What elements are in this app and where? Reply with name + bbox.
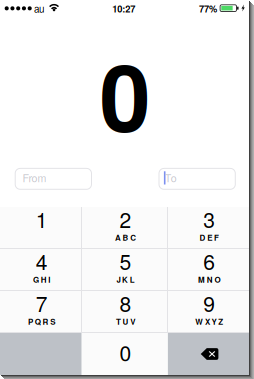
staticText: U	[123, 316, 129, 327]
staticText: From	[22, 170, 46, 185]
button[interactable]: Blank	[0, 333, 82, 375]
staticText: C	[130, 232, 136, 243]
staticText: T	[116, 316, 121, 327]
staticText: P	[28, 316, 33, 327]
staticText: 4	[36, 246, 48, 276]
staticText: F	[214, 232, 219, 243]
staticText: 2	[120, 204, 132, 234]
staticText: K	[122, 274, 128, 285]
button[interactable]: 8	[82, 291, 168, 333]
button[interactable]: 4	[0, 249, 82, 291]
button[interactable]: From	[15, 168, 91, 189]
staticText: W	[195, 316, 203, 327]
staticText: O	[214, 274, 220, 285]
button[interactable]: To	[159, 168, 235, 189]
staticText: 9	[203, 288, 215, 318]
button[interactable]: 2	[82, 207, 168, 249]
staticText: 0	[99, 28, 150, 160]
button[interactable]: 1	[0, 207, 82, 249]
staticText: 10:27	[112, 2, 135, 15]
staticText: Y	[212, 316, 217, 327]
staticText: M	[198, 274, 205, 285]
staticText: To	[165, 170, 177, 185]
staticText: L	[130, 274, 135, 285]
staticText: J	[116, 274, 120, 285]
button[interactable]: 9	[168, 291, 249, 333]
staticText: A	[115, 232, 121, 243]
staticText: au	[34, 1, 44, 16]
staticText: 0	[120, 337, 132, 367]
staticText: Q	[35, 316, 41, 327]
staticText: 77%	[199, 2, 217, 15]
staticText: X	[205, 316, 210, 327]
staticText: E	[207, 232, 212, 243]
staticText: G	[33, 274, 39, 285]
staticText: D	[199, 232, 205, 243]
staticText: S	[50, 316, 55, 327]
button[interactable]: 6	[168, 249, 249, 291]
staticText: H	[41, 274, 47, 285]
staticText: N	[207, 274, 213, 285]
button[interactable]: 5	[82, 249, 168, 291]
button[interactable]: Delete	[168, 333, 249, 375]
staticText: R	[42, 316, 48, 327]
staticText: I	[48, 274, 50, 285]
button[interactable]: 7	[0, 291, 82, 333]
staticText: Z	[218, 316, 223, 327]
staticText: 6	[203, 246, 215, 276]
staticText: 1	[36, 204, 48, 234]
button[interactable]: 3	[168, 207, 249, 249]
staticText: 3	[203, 204, 215, 234]
staticText: V	[130, 316, 135, 327]
staticText: 5	[120, 246, 132, 276]
button[interactable]: 0	[82, 333, 168, 375]
staticText: B	[123, 232, 129, 243]
staticText: 7	[36, 288, 48, 318]
staticText: 8	[120, 288, 132, 318]
